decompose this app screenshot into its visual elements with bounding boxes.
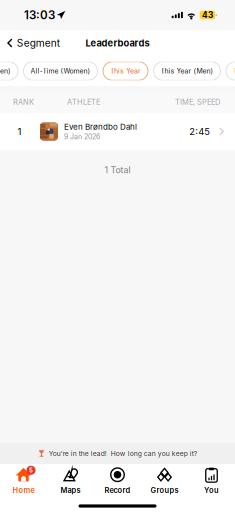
staticText: RANK: [13, 97, 34, 106]
staticText: Home: [12, 486, 34, 495]
staticText: Even Brøndbo Dahl: [64, 122, 137, 132]
button[interactable]: Segment: [0, 32, 68, 54]
button[interactable]: 1: [0, 113, 235, 150]
button[interactable]: This Year (Women): [226, 62, 235, 80]
staticText: TIME, SPEED: [175, 97, 220, 106]
button[interactable]: All-Time (Men): [0, 62, 18, 80]
staticText: All-Time (Men): [0, 67, 11, 75]
staticText: This Year: [110, 67, 141, 75]
button[interactable]: Maps: [47, 464, 94, 498]
staticText: This Year (Men): [160, 67, 213, 75]
staticText: 43: [202, 10, 213, 20]
staticText: 5: [29, 466, 33, 474]
staticText: 1 Total: [104, 165, 130, 175]
staticText: Record: [104, 486, 130, 495]
staticText: All-Time (Women): [30, 67, 90, 75]
staticText: Groups: [150, 486, 178, 495]
button[interactable]: This Year: [103, 62, 148, 80]
staticText: 9 Jan 2026: [64, 133, 100, 141]
staticText: This Year (Women): [233, 67, 235, 75]
staticText: 2:45: [189, 126, 210, 137]
staticText: 1: [17, 126, 21, 137]
button[interactable]: You: [188, 464, 235, 498]
button[interactable]: All-Time (Women): [23, 62, 97, 80]
button[interactable]: 5: [0, 464, 47, 498]
button[interactable]: Record: [94, 464, 141, 498]
staticText: ATHLETE: [67, 97, 100, 106]
staticText: 13:03: [24, 8, 55, 22]
staticText: You: [204, 486, 219, 495]
button[interactable]: Groups: [141, 464, 188, 498]
staticText: Leaderboards: [85, 37, 149, 49]
staticText: Segment: [17, 37, 60, 49]
staticText: Maps: [60, 486, 80, 495]
staticText: You're in the lead! How long can you kee…: [49, 449, 197, 457]
button[interactable]: This Year (Men): [153, 62, 220, 80]
